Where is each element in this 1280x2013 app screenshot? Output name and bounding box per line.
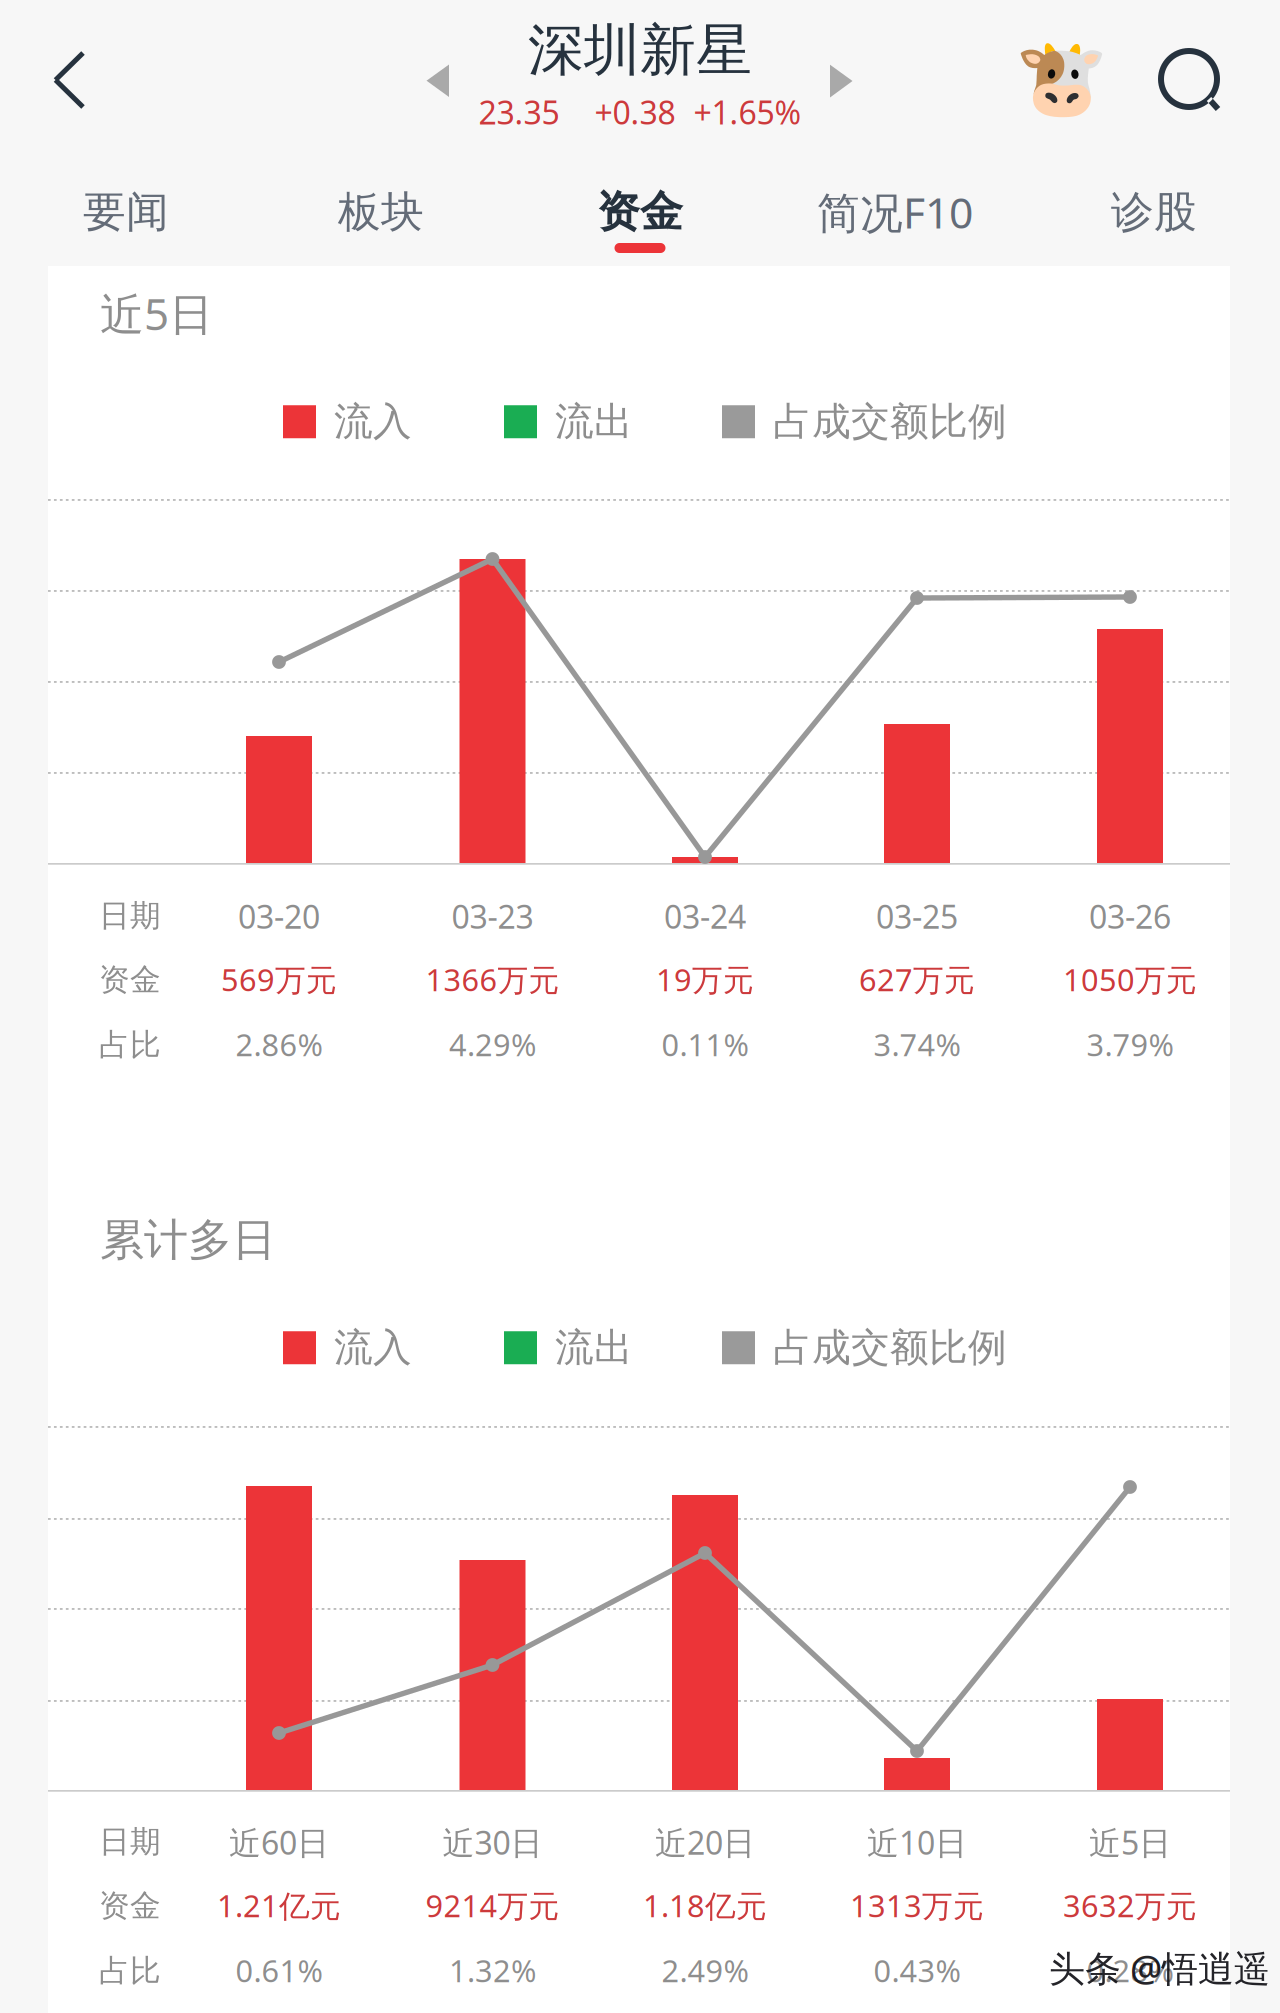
staticText: 🐮 xyxy=(1014,35,1107,121)
staticText: 0.11% xyxy=(661,1024,748,1065)
staticText: 日期 xyxy=(99,1823,161,1861)
button[interactable]: 简况F10 xyxy=(780,181,1010,293)
staticText: 近5日 xyxy=(100,284,213,342)
staticText: 03-24 xyxy=(664,895,746,937)
staticText: 要闻 xyxy=(83,186,169,238)
staticText: 流入 xyxy=(334,398,412,445)
staticText: 累计多日 xyxy=(100,1213,276,1267)
staticText: 1366万元 xyxy=(425,959,559,1000)
staticText: 深圳新星 xyxy=(528,16,752,85)
staticText: 627万元 xyxy=(859,959,975,1000)
staticText: 3.79% xyxy=(1086,1024,1173,1065)
staticText: 占成交额比例 xyxy=(773,398,1007,445)
button[interactable]: 板块 xyxy=(266,181,496,293)
staticText: 03-26 xyxy=(1089,895,1171,937)
staticText: +1.65% xyxy=(693,91,801,133)
staticText: 23.35 xyxy=(478,91,559,133)
staticText: 资金 xyxy=(99,961,161,999)
staticText: 1313万元 xyxy=(850,1885,984,1926)
button[interactable]: 诊股 xyxy=(1039,181,1269,293)
staticText: 近60日 xyxy=(229,1821,329,1863)
staticText: 简况F10 xyxy=(817,184,973,240)
staticText: 资金 xyxy=(597,186,683,238)
staticText: 近10日 xyxy=(867,1821,967,1863)
staticText: 1.32% xyxy=(449,1950,536,1991)
staticText: 头条 @悟逍遥 xyxy=(1049,1944,1270,1992)
button[interactable]: Search xyxy=(0,0,1280,150)
button[interactable]: Stock mascot xyxy=(1001,3,1121,153)
staticText: 近30日 xyxy=(442,1821,542,1863)
staticText: 3632万元 xyxy=(1063,1885,1197,1926)
button[interactable]: Next stock xyxy=(0,0,900,150)
staticText: 03-23 xyxy=(451,895,533,937)
staticText: 0.28% xyxy=(1086,1950,1173,1991)
staticText: 近5日 xyxy=(1089,1821,1171,1863)
staticText: 流出 xyxy=(555,1324,633,1371)
staticText: 2.86% xyxy=(235,1024,322,1065)
staticText: 2.49% xyxy=(661,1950,748,1991)
staticText: 近20日 xyxy=(655,1821,755,1863)
button[interactable]: Back xyxy=(0,0,140,150)
staticText: 流入 xyxy=(334,1324,412,1371)
button[interactable]: 资金 xyxy=(525,181,755,293)
staticText: 19万元 xyxy=(656,959,754,1000)
staticText: 03-20 xyxy=(238,895,320,937)
staticText: 日期 xyxy=(99,897,161,935)
staticText: +0.38 xyxy=(594,91,675,133)
staticText: 4.29% xyxy=(449,1024,536,1065)
staticText: 1050万元 xyxy=(1063,959,1197,1000)
staticText: 诊股 xyxy=(1111,186,1197,238)
button[interactable]: Previous stock xyxy=(0,0,520,150)
staticText: 1.21亿元 xyxy=(217,1885,341,1926)
staticText: 占成交额比例 xyxy=(773,1324,1007,1371)
staticText: 9214万元 xyxy=(425,1885,559,1926)
staticText: 1.18亿元 xyxy=(643,1885,767,1926)
staticText: 资金 xyxy=(99,1887,161,1925)
staticText: 0.61% xyxy=(235,1950,322,1991)
staticText: 板块 xyxy=(338,186,424,238)
staticText: 3.74% xyxy=(873,1024,960,1065)
staticText: 569万元 xyxy=(221,959,337,1000)
staticText: 占比 xyxy=(99,1026,161,1064)
staticText: 0.43% xyxy=(873,1950,960,1991)
staticText: 流出 xyxy=(555,398,633,445)
button[interactable]: 要闻 xyxy=(11,181,241,293)
staticText: 03-25 xyxy=(876,895,958,937)
staticText: 占比 xyxy=(99,1952,161,1990)
